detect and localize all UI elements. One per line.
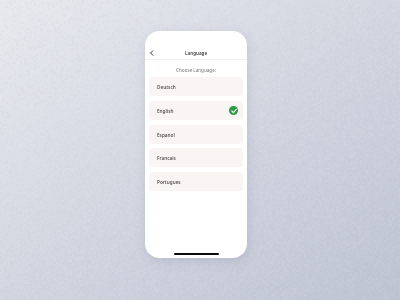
button[interactable]: Francais: [149, 148, 243, 167]
staticText: Espanol: [157, 132, 175, 138]
button[interactable]: Deutsch: [149, 77, 243, 96]
staticText: Language: [185, 50, 208, 56]
button[interactable]: Portugues: [149, 172, 243, 191]
button[interactable]: English: [149, 101, 243, 120]
staticText: Francais: [157, 155, 176, 161]
button[interactable]: Back: [147, 48, 157, 58]
button[interactable]: Espanol: [149, 125, 243, 144]
staticText: Deutsch: [157, 84, 176, 90]
staticText: English: [157, 108, 174, 114]
staticText: Choose Language:: [145, 67, 247, 73]
staticText: Portugues: [157, 179, 181, 185]
